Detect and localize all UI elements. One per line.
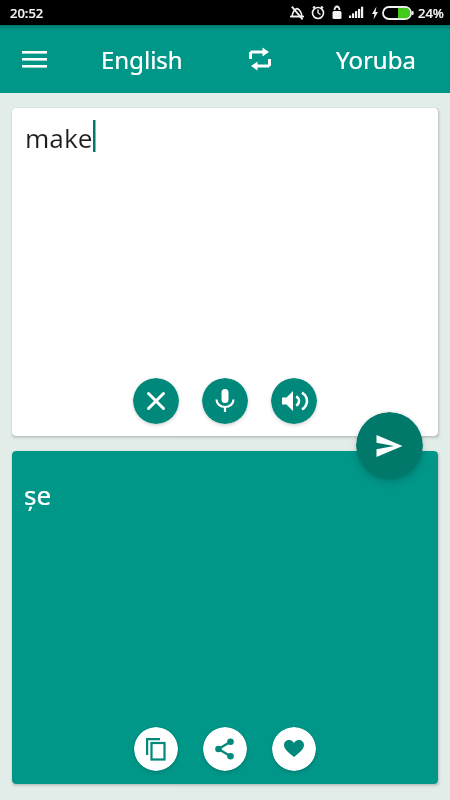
staticText: 24% (418, 4, 444, 22)
button[interactable] (272, 727, 316, 771)
button[interactable]: English (101, 43, 183, 76)
button[interactable] (134, 727, 178, 771)
button[interactable] (240, 39, 280, 79)
button[interactable] (14, 39, 54, 79)
button[interactable]: Yoruba (336, 43, 416, 76)
button[interactable] (356, 412, 423, 479)
staticText: make (25, 120, 93, 155)
staticText: 20:52 (10, 4, 44, 22)
staticText: șe (24, 477, 52, 512)
button[interactable] (202, 378, 248, 424)
button[interactable] (133, 378, 179, 424)
button[interactable]: make (12, 108, 438, 436)
button[interactable] (271, 378, 317, 424)
button[interactable] (203, 727, 247, 771)
